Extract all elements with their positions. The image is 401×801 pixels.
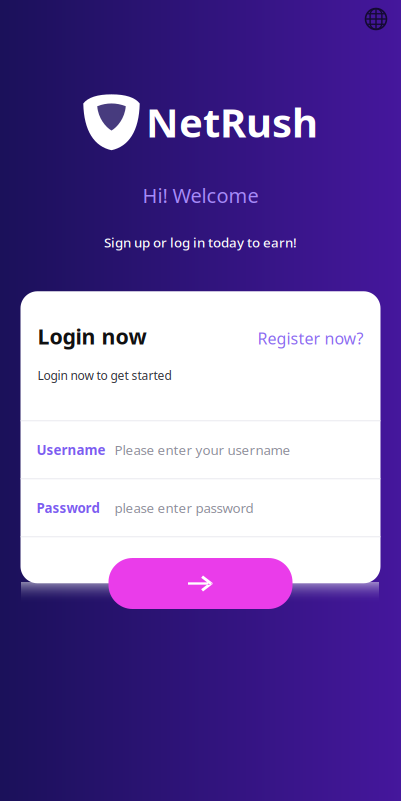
staticText: Login now to get started <box>37 367 171 383</box>
button[interactable]: Username <box>20 421 380 478</box>
staticText: Hi! Welcome <box>142 182 258 209</box>
button[interactable]: Register now? <box>257 327 363 349</box>
button[interactable]: Language <box>358 1 394 37</box>
staticText: Password <box>36 499 99 517</box>
button[interactable]: Password <box>20 479 380 536</box>
staticText: Register now? <box>257 327 363 349</box>
staticText: Username <box>36 441 105 459</box>
staticText: Sign up or log in today to earn! <box>104 234 297 251</box>
staticText: Please enter your username <box>114 441 290 459</box>
staticText: NetRush <box>146 95 318 148</box>
staticText: please enter password <box>114 499 253 517</box>
staticText: Login now <box>37 322 146 350</box>
button[interactable]: Continue <box>108 558 292 609</box>
